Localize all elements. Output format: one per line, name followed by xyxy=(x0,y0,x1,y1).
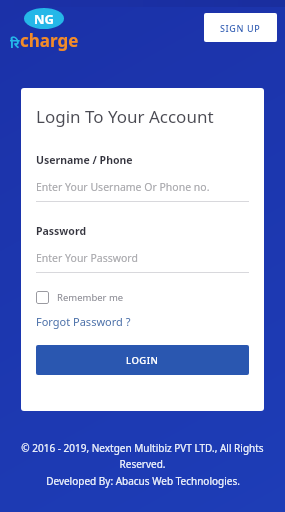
staticText: Login To Your Account xyxy=(36,105,214,128)
button[interactable]: Forgot Password ? xyxy=(36,314,131,329)
staticText: charge xyxy=(20,29,79,52)
staticText: Enter Your Username Or Phone no. xyxy=(36,180,210,194)
staticText: Password xyxy=(36,224,87,238)
staticText: SIGN UP xyxy=(220,22,261,34)
staticText: LOGIN xyxy=(126,354,159,367)
button[interactable]: LOGIN xyxy=(36,345,249,375)
staticText: रि xyxy=(10,34,20,52)
staticText: Forgot Password ? xyxy=(36,314,131,329)
staticText: Enter Your Password xyxy=(36,251,138,265)
button[interactable]: Remember me xyxy=(36,289,124,306)
button[interactable]: NG Recharge logo xyxy=(10,8,79,52)
staticText: Developed By: Abacus Web Technologies. xyxy=(46,474,240,488)
staticText: © 2016 - 2019, Nextgen Multibiz PVT LTD.… xyxy=(10,441,275,470)
staticText: NG xyxy=(34,10,54,28)
button[interactable]: Enter Your Username Or Phone no. xyxy=(36,180,249,202)
button[interactable]: SIGN UP xyxy=(204,13,277,42)
button[interactable]: Enter Your Password xyxy=(36,251,249,273)
staticText: Username / Phone xyxy=(36,153,133,167)
staticText: Remember me xyxy=(57,291,124,304)
